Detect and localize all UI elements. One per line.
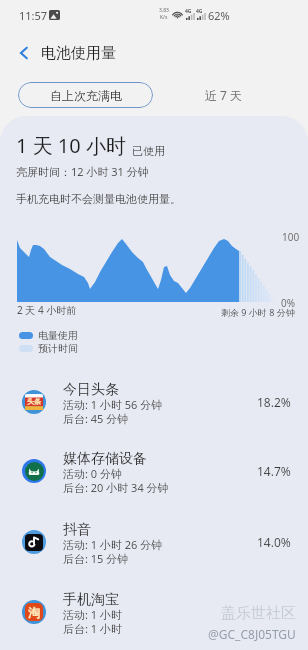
staticText: 电池使用量 <box>41 44 116 63</box>
staticText: 电量使用 <box>38 329 78 342</box>
staticText: 活动: 0 分钟 <box>63 466 122 480</box>
staticText: 14.7% <box>257 463 291 479</box>
staticText: 后台: 1 小时 <box>63 621 122 635</box>
staticText: 1 天 10 小时 <box>16 132 126 159</box>
button[interactable]: 近 7 天 <box>205 87 243 103</box>
staticText: 自上次充满电 <box>50 88 122 103</box>
staticText: 活动: 1 小时 <box>63 607 122 621</box>
staticText: 后台: 20 小时 34 分钟 <box>63 480 169 494</box>
staticText: 活动: 1 小时 56 分钟 <box>63 397 163 411</box>
button[interactable]: 自上次充满电 <box>18 82 153 108</box>
staticText: 手机充电时不会测量电池使用量。 <box>16 192 181 206</box>
button[interactable]: 抖音 <box>0 506 308 576</box>
staticText: 已使用 <box>132 144 165 158</box>
staticText: 抖音 <box>63 521 91 537</box>
staticText: 剩余 9 小时 8 分钟 <box>221 306 295 318</box>
staticText: @GC_C8J05TGU <box>208 626 296 642</box>
staticText: 100 <box>282 230 300 244</box>
staticText: 18.2% <box>257 394 291 410</box>
button[interactable]: 媒体存储设备 <box>0 435 308 505</box>
staticText: 盖乐世社区 <box>221 604 296 623</box>
button[interactable]: 头条 <box>0 366 308 436</box>
staticText: 媒体存储设备 <box>63 450 147 466</box>
staticText: 3.83 <box>159 7 169 14</box>
staticText: 4G <box>196 8 203 15</box>
staticText: 亮屏时间：12 小时 31 分钟 <box>16 164 149 179</box>
staticText: 后台: 45 分钟 <box>63 411 129 425</box>
staticText: 4G <box>185 8 192 15</box>
staticText: 2 天 4 小时前 <box>17 303 77 317</box>
staticText: 14.0% <box>257 534 291 550</box>
staticText: 0% <box>281 296 301 310</box>
staticText: 62% <box>208 8 230 23</box>
staticText: 今日头条 <box>63 381 119 397</box>
button[interactable]: 淘 <box>0 576 308 646</box>
staticText: 11:57 <box>19 8 48 23</box>
staticText: 淘 <box>28 605 40 620</box>
staticText: 活动: 1 小时 26 分钟 <box>63 537 163 551</box>
staticText: K/s <box>160 14 168 21</box>
staticText: 手机淘宝 <box>63 591 119 607</box>
button[interactable]: Back <box>9 38 39 68</box>
staticText: 后台: 15 分钟 <box>63 551 129 565</box>
staticText: 头条 <box>27 397 41 406</box>
staticText: 预计时间 <box>38 342 78 355</box>
